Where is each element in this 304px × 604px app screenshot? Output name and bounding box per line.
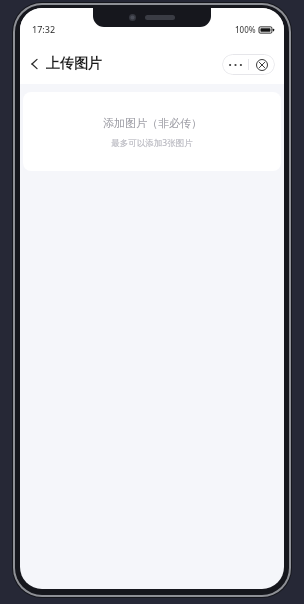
button[interactable]: 上传图片 xyxy=(24,51,108,77)
staticText: 100% xyxy=(235,24,256,35)
staticText: 最多可以添加3张图片 xyxy=(111,137,193,149)
button[interactable]: 添加图片（非必传） xyxy=(23,92,281,171)
button[interactable]: More options xyxy=(222,54,248,75)
staticText: 上传图片 xyxy=(46,55,102,73)
staticText: 添加图片（非必传） xyxy=(103,116,202,130)
button[interactable]: Close xyxy=(249,54,275,75)
staticText: 17:32 xyxy=(32,23,56,35)
